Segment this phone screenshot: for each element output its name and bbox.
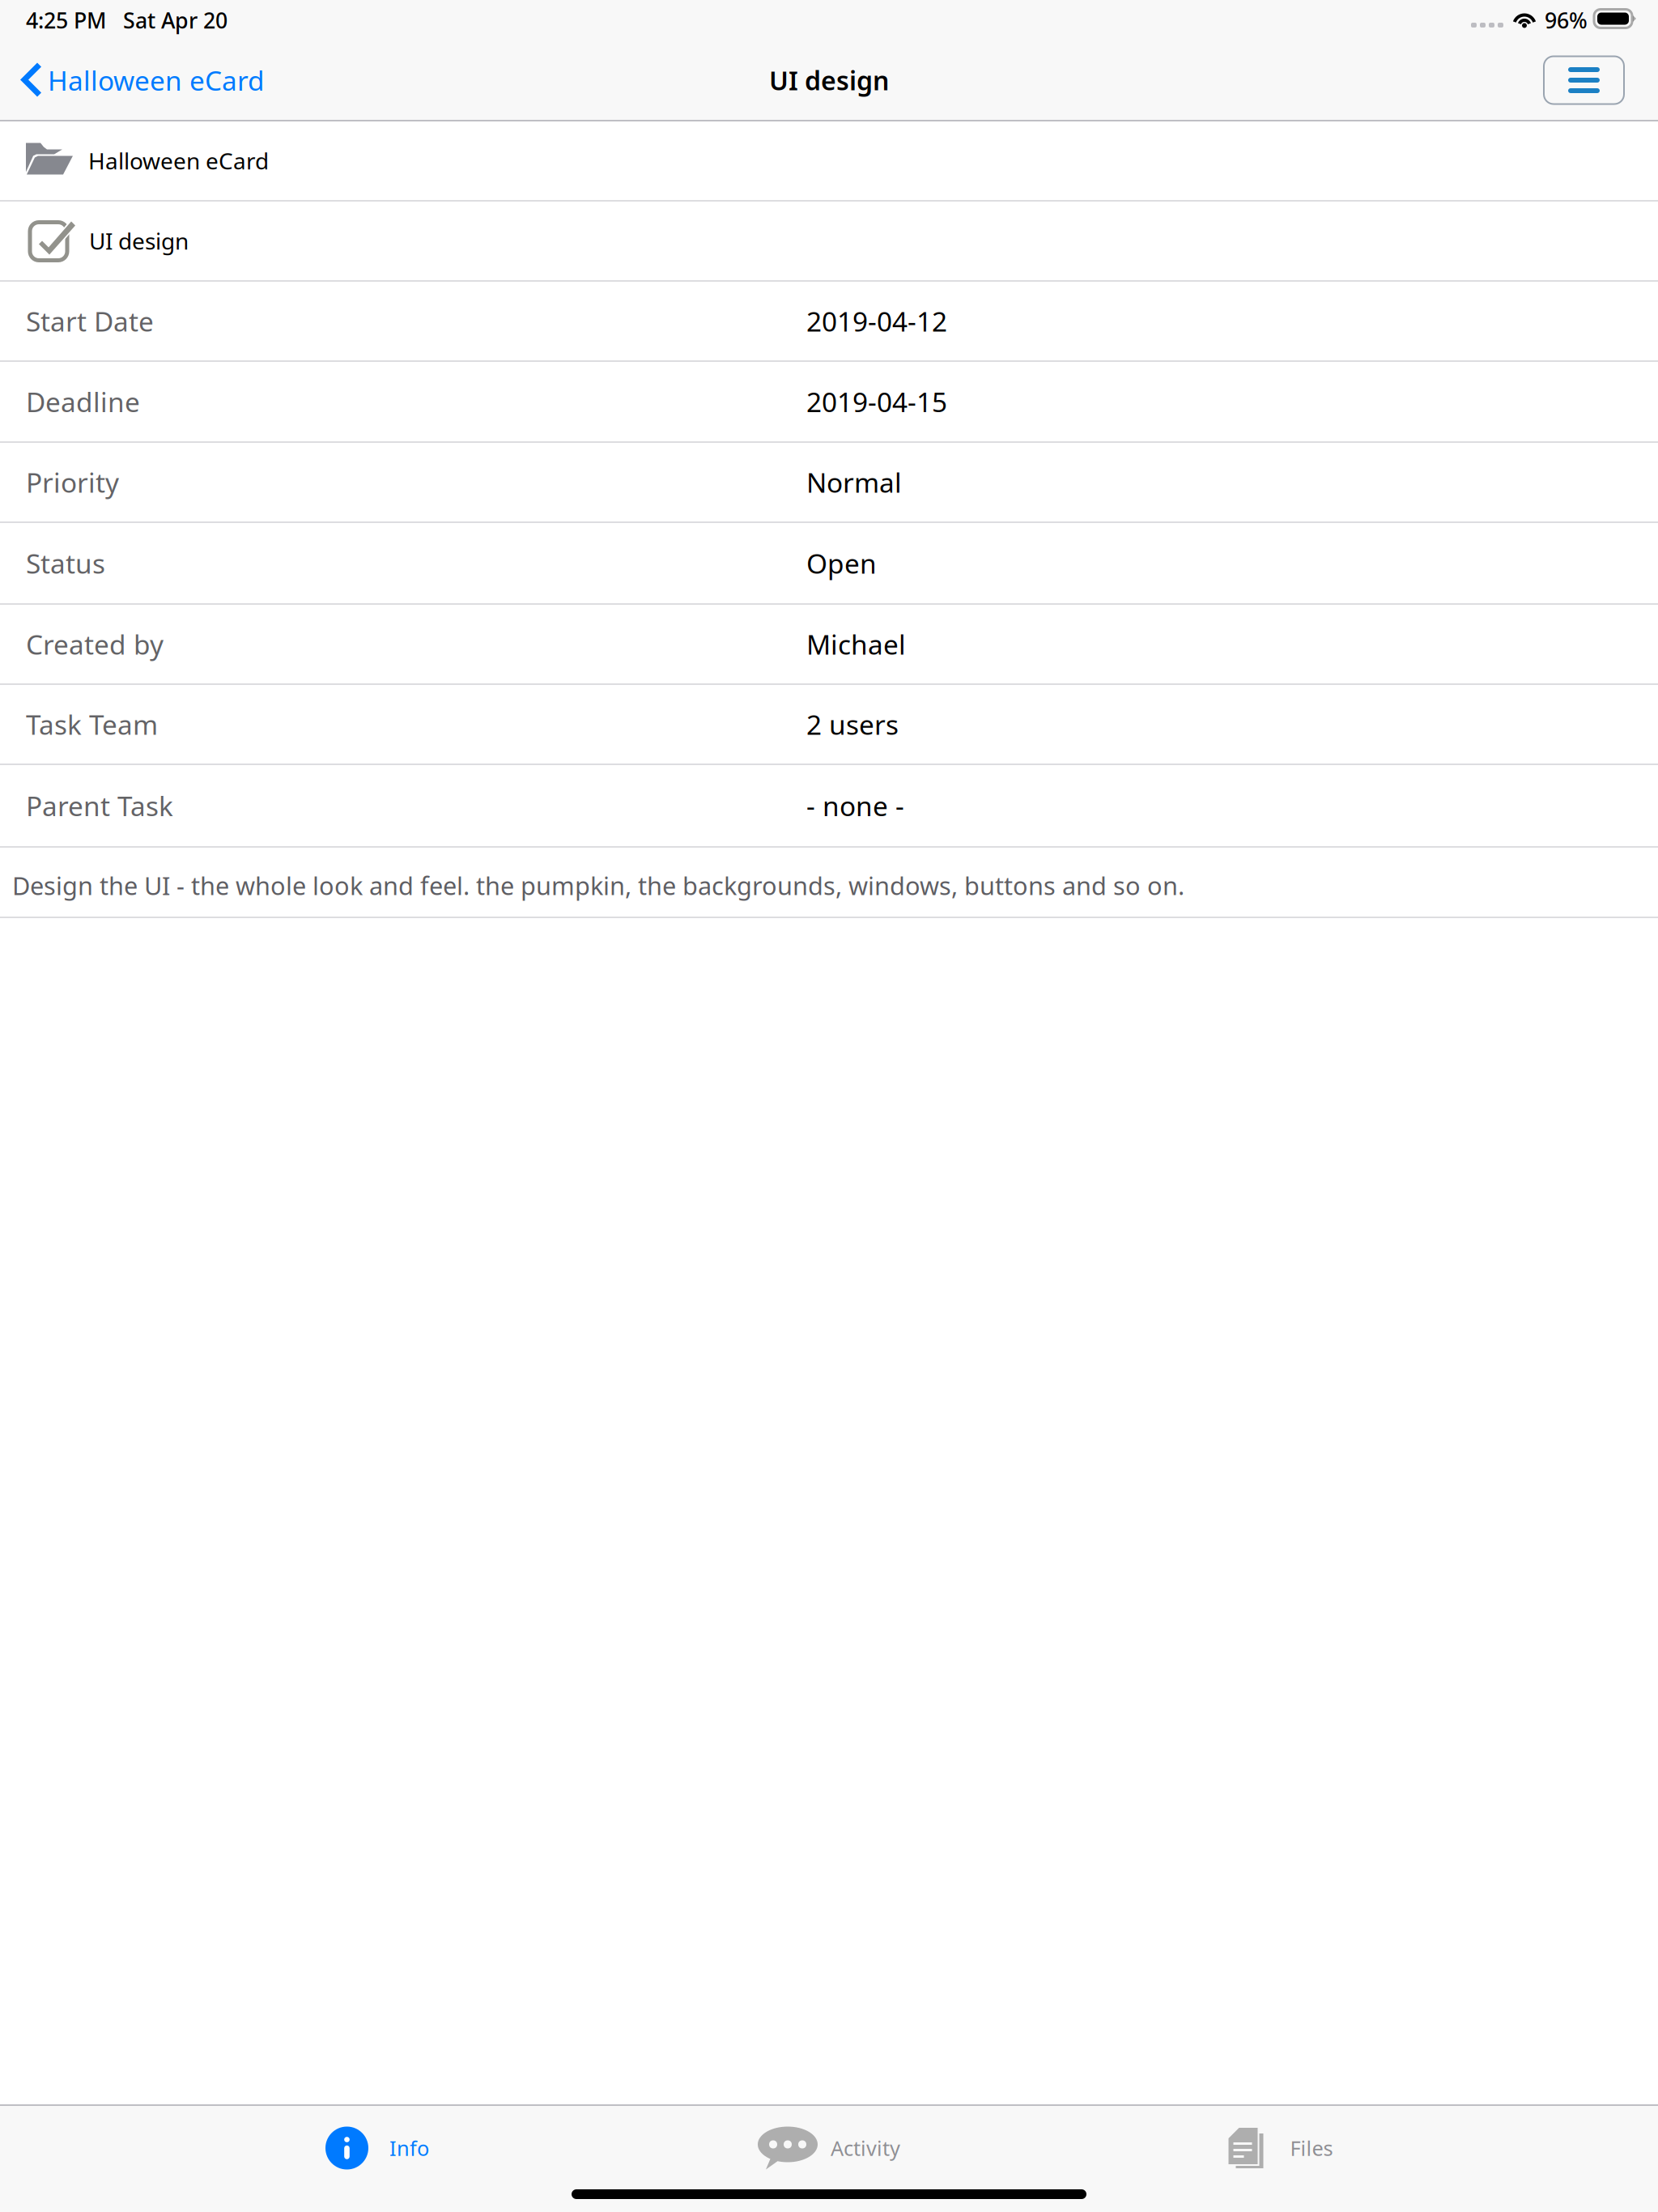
staticText: 2019-04-15	[806, 384, 947, 420]
button[interactable]: Halloween eCard	[0, 121, 1658, 200]
staticText: Deadline	[26, 384, 140, 420]
button[interactable]: Status	[0, 523, 1658, 603]
staticText: Activity	[831, 2134, 900, 2162]
button[interactable]: Deadline	[0, 362, 1658, 441]
button[interactable]: Task Team	[0, 685, 1658, 764]
staticText: UI design	[769, 63, 889, 97]
staticText: Info	[389, 2134, 429, 2162]
button[interactable]: Info	[151, 2114, 603, 2182]
staticText: Status	[26, 545, 105, 581]
staticText: Open	[806, 545, 877, 581]
staticText: Task Team	[26, 706, 158, 742]
button[interactable]: Start Date	[0, 282, 1658, 360]
staticText: Priority	[26, 464, 119, 500]
staticText: 2019-04-12	[806, 303, 947, 339]
staticText: Halloween eCard	[48, 62, 265, 98]
staticText: Parent Task	[26, 788, 173, 824]
button[interactable]: Halloween eCard	[0, 49, 265, 111]
button[interactable]: Menu	[1544, 56, 1624, 104]
staticText: - none -	[806, 788, 904, 824]
button[interactable]: Priority	[0, 443, 1658, 521]
staticText: Michael	[806, 626, 906, 662]
staticText: Start Date	[26, 303, 154, 339]
button[interactable]: Files	[1055, 2114, 1507, 2182]
staticText: UI design	[89, 226, 189, 256]
staticText: Created by	[26, 626, 164, 662]
staticText: Halloween eCard	[88, 146, 269, 176]
button[interactable]: Created by	[0, 605, 1658, 683]
staticText: Sat Apr 20	[123, 6, 227, 35]
staticText: Files	[1290, 2134, 1333, 2162]
staticText: Design the UI - the whole look and feel.…	[12, 869, 1184, 902]
staticText: 4:25 PM	[26, 6, 106, 35]
button[interactable]: Parent Task	[0, 765, 1658, 846]
button[interactable]: Activity	[603, 2114, 1055, 2182]
button[interactable]: UI design	[0, 202, 1658, 280]
staticText: Normal	[806, 464, 902, 500]
staticText: 2 users	[806, 706, 899, 742]
staticText: 96%	[1545, 6, 1588, 35]
